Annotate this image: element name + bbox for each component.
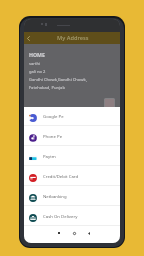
button[interactable]: Cash On Delivery	[24, 206, 120, 225]
button[interactable]: Home	[69, 228, 79, 238]
staticText: Credit/Debit Card	[43, 173, 79, 179]
staticText: Phone Pe	[43, 133, 63, 139]
staticText: Fatehabad, Punjab	[29, 85, 65, 91]
button[interactable]: Back	[84, 228, 94, 238]
button[interactable]: Google Pe	[24, 107, 120, 125]
button[interactable]: Credit/Debit Card	[24, 166, 120, 185]
staticText: My Address	[57, 34, 89, 42]
staticText: Paytm	[43, 153, 56, 159]
button[interactable]: Edit address	[104, 98, 115, 108]
staticText: sarthi	[29, 61, 41, 67]
button[interactable]: Back	[24, 33, 32, 44]
staticText: Cash On Delivery	[43, 213, 78, 219]
button[interactable]: Phone Pe	[24, 126, 120, 145]
staticText: Gandhi Chowk,Gandhi Chowk,	[29, 77, 87, 83]
staticText: gali no 2	[29, 69, 46, 75]
button[interactable]: Recents	[54, 228, 64, 238]
button[interactable]: Netbanking	[24, 186, 120, 205]
staticText: Netbanking	[43, 193, 67, 199]
staticText: HOME	[29, 51, 45, 58]
button[interactable]: Paytm	[24, 146, 120, 165]
staticText: Google Pe	[43, 113, 64, 119]
